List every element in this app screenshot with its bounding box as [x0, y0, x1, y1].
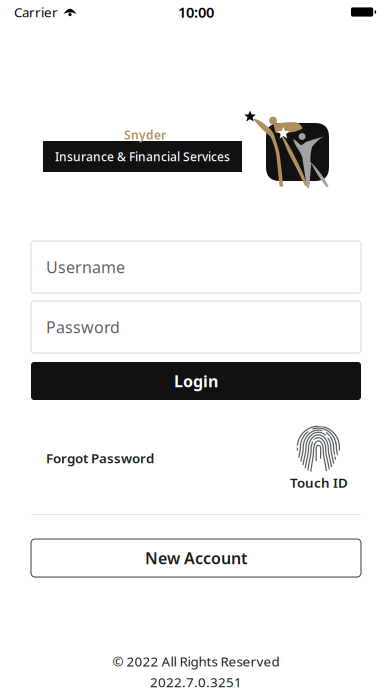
staticText: © 2022 All Rights Reserved: [112, 653, 279, 670]
button[interactable]: Login: [31, 362, 361, 400]
staticText: Password: [46, 316, 120, 338]
staticText: 10:00: [178, 2, 214, 22]
staticText: New Account: [145, 547, 247, 569]
staticText: Insurance & Financial Services: [55, 148, 230, 164]
button[interactable]: New Account: [31, 539, 361, 577]
button[interactable]: Touch ID: [290, 425, 348, 491]
staticText: Touch ID: [290, 474, 348, 491]
staticText: Snyder: [124, 127, 166, 143]
button[interactable]: Forgot Password: [46, 443, 154, 473]
staticText: Login: [174, 370, 218, 392]
staticText: 2022.7.0.3251: [150, 673, 242, 691]
staticText: Carrier: [14, 3, 58, 21]
staticText: Username: [46, 256, 125, 278]
staticText: Forgot Password: [46, 449, 154, 467]
